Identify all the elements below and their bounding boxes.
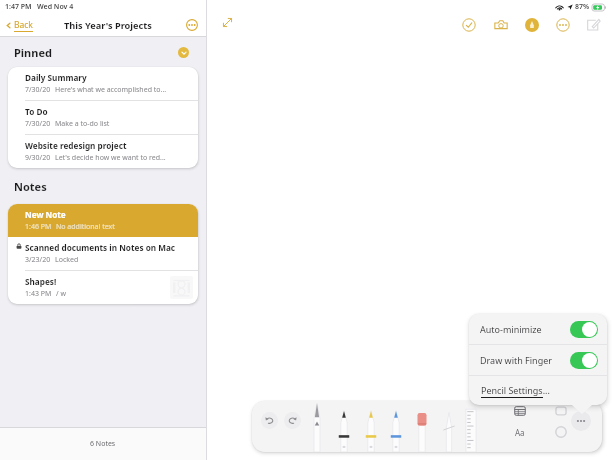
staticText: Let's decide how we want to red...	[55, 153, 166, 163]
staticText: Aa	[515, 427, 525, 438]
button[interactable]: Redo	[284, 412, 301, 429]
button[interactable]: Drawing tool	[332, 401, 356, 452]
button[interactable]: More options	[185, 18, 199, 32]
button[interactable]: Drawing tool	[437, 401, 461, 452]
staticText: Locked	[55, 255, 79, 265]
button[interactable]: Markup	[523, 16, 541, 34]
button[interactable]: Camera	[492, 16, 510, 34]
button[interactable]: Undo shape	[551, 422, 571, 442]
button[interactable]: Daily Summary	[8, 67, 198, 100]
button[interactable]: Drawing tool	[359, 401, 383, 452]
staticText: This Year's Projects	[64, 19, 152, 32]
staticText: Make a to-do list	[55, 119, 110, 129]
staticText: Website redesign project	[25, 140, 127, 151]
staticText: 7/30/20	[25, 119, 51, 129]
staticText: Shapes!	[25, 276, 57, 287]
staticText: 1:46 PM	[25, 222, 52, 232]
button[interactable]: Expand	[218, 13, 236, 31]
button[interactable]: More	[554, 16, 572, 34]
button[interactable]: Auto-minimize	[469, 314, 607, 344]
button[interactable]: Drawing tool	[305, 401, 329, 452]
staticText: Wed Nov 4	[37, 2, 74, 12]
button[interactable]: To Do	[8, 101, 198, 134]
button[interactable]: Compose	[584, 16, 602, 34]
button[interactable]: Shapes!	[8, 271, 198, 304]
button[interactable]: More tools	[571, 411, 591, 431]
button[interactable]: Text style	[510, 422, 530, 442]
staticText: Notes	[14, 179, 47, 194]
button[interactable]: Drawing tool	[459, 401, 483, 452]
button[interactable]: Undo	[261, 412, 278, 429]
button[interactable]: Website redesign project	[8, 135, 198, 168]
staticText: To Do	[25, 106, 48, 117]
button[interactable]: New Note	[8, 204, 198, 237]
staticText: Pinned	[14, 45, 52, 60]
staticText: Auto-minimize	[480, 323, 542, 335]
button[interactable]: Insert table	[510, 401, 530, 421]
staticText: Back	[14, 19, 33, 31]
staticText: 9/30/20	[25, 153, 51, 163]
button[interactable]: Draw with Finger	[469, 345, 607, 375]
staticText: Here's what we accomplished to...	[55, 85, 167, 95]
staticText: Daily Summary	[25, 72, 87, 83]
button[interactable]: Scanned documents in Notes on Mac	[8, 237, 198, 270]
button[interactable]: Shapes	[551, 401, 571, 421]
staticText: 7/30/20	[25, 85, 51, 95]
staticText: 6 Notes	[90, 439, 116, 449]
staticText: 1:43 PM	[25, 289, 52, 299]
staticText: Draw with Finger	[480, 354, 553, 366]
staticText: No additional text	[56, 222, 115, 232]
staticText: 87%	[575, 2, 590, 12]
button[interactable]: Drawing tool	[410, 401, 434, 452]
staticText: Scanned documents in Notes on Mac	[25, 242, 176, 253]
button[interactable]: Back	[5, 19, 36, 32]
button[interactable]: Collapse pinned	[178, 47, 189, 58]
button[interactable]: Drawing tool	[384, 401, 408, 452]
staticText: Pencil Settings...	[481, 384, 550, 396]
button[interactable]: Pencil Settings...	[469, 376, 607, 405]
staticText: New Note	[25, 209, 66, 220]
staticText: 1:47 PM	[5, 2, 32, 12]
staticText: / w	[56, 289, 66, 299]
button[interactable]: Done	[460, 16, 478, 34]
staticText: 3/23/20	[25, 255, 51, 265]
